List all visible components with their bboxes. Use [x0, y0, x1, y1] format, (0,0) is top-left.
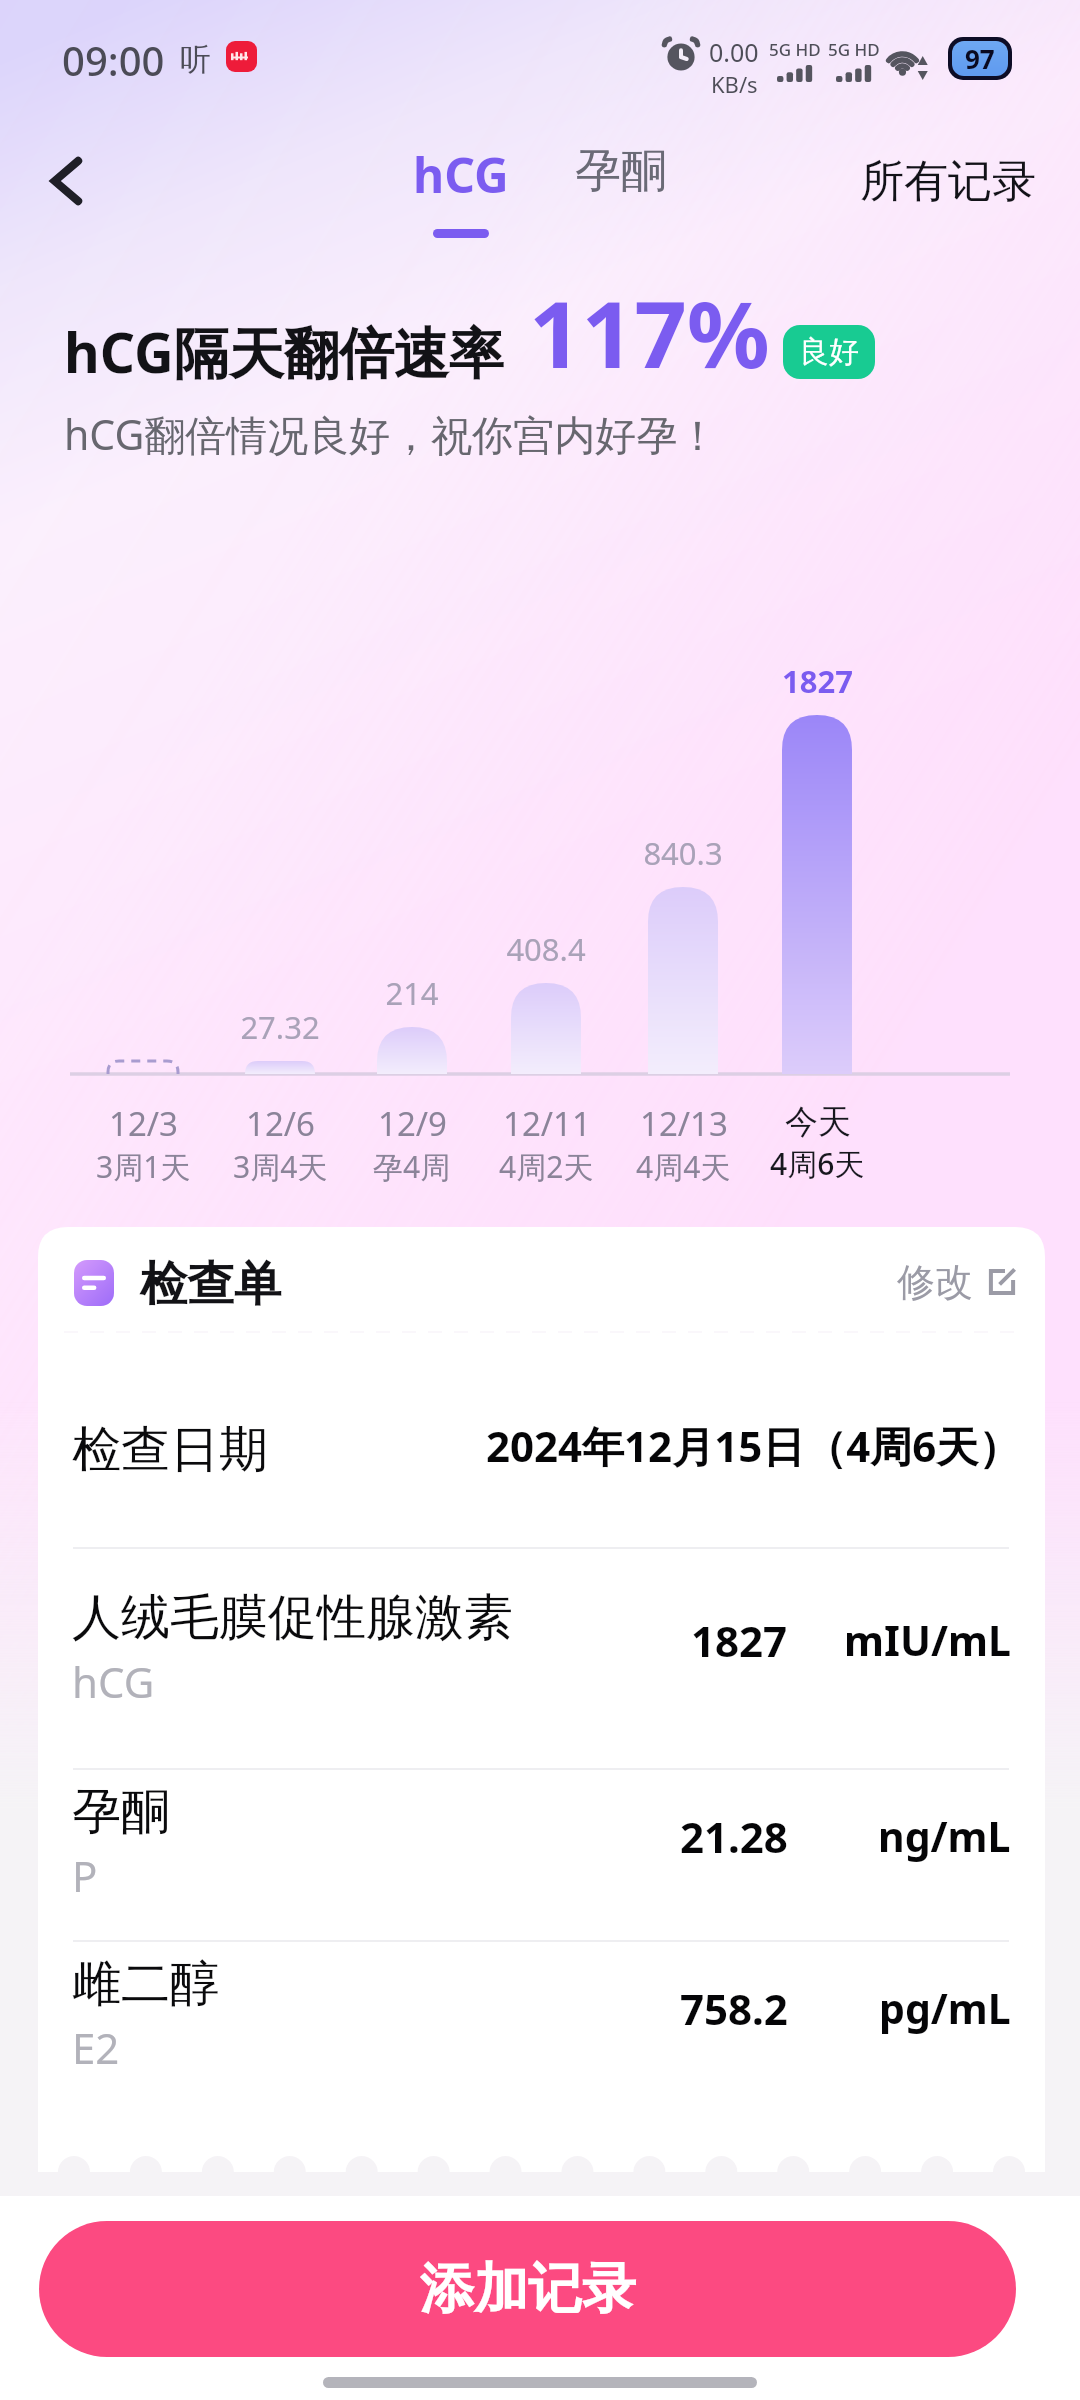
staticText: 2024年12月15日（4周6天） — [486, 1417, 1021, 1474]
staticText: 3周1天 — [96, 1146, 191, 1187]
staticText: 听 — [180, 40, 211, 79]
staticText: 117% — [529, 270, 770, 395]
staticText: 4周4天 — [636, 1146, 731, 1187]
staticText: KB/s — [711, 69, 758, 99]
staticText: 12/9 — [378, 1101, 447, 1146]
staticText: 1827 — [782, 660, 853, 702]
staticText: 检查日期 — [72, 1419, 268, 1481]
staticText: 0.00 — [709, 35, 759, 69]
button[interactable]: 添加记录 — [39, 2221, 1016, 2357]
staticText: 孕酮 — [575, 142, 667, 200]
staticText: 人绒毛膜促性腺激素 — [72, 1587, 513, 1649]
staticText: hCG — [413, 142, 509, 207]
staticText: 5G HD — [828, 38, 880, 61]
staticText: 840.3 — [643, 832, 723, 874]
button[interactable]: 修改 — [897, 1252, 1017, 1312]
staticText: 21.28 — [680, 1808, 788, 1865]
staticText: pg/mL — [879, 1980, 1011, 2036]
staticText: 408.4 — [506, 928, 586, 970]
staticText: 3周4天 — [233, 1146, 328, 1187]
staticText: 1827 — [691, 1612, 788, 1669]
button[interactable]: hCG — [391, 142, 531, 254]
staticText: hCG翻倍情况良好，祝你宫内好孕！ — [64, 406, 719, 462]
staticText: hCG — [72, 1653, 155, 1710]
button[interactable]: 所有记录 — [848, 136, 1048, 226]
staticText: 12/6 — [246, 1101, 315, 1146]
staticText: hCG隔天翻倍速率 — [64, 314, 504, 389]
staticText: mIU/mL — [844, 1612, 1011, 1668]
staticText: 5G HD — [769, 38, 821, 61]
staticText: 所有记录 — [860, 154, 1036, 209]
staticText: 12/3 — [109, 1101, 178, 1146]
staticText: 4周2天 — [499, 1146, 594, 1187]
staticText: 良好 — [799, 333, 859, 371]
staticText: 758.2 — [680, 1980, 788, 2037]
staticText: 添加记录 — [420, 2255, 636, 2323]
staticText: 97 — [965, 41, 995, 76]
staticText: 27.32 — [240, 1006, 320, 1048]
staticText: ng/mL — [878, 1808, 1011, 1864]
staticText: 09:00 — [62, 33, 165, 87]
staticText: 4周6天 — [770, 1143, 865, 1184]
staticText: 214 — [385, 972, 439, 1014]
staticText: 孕酮 — [72, 1781, 170, 1843]
staticText: 雌二醇 — [72, 1953, 219, 2015]
button[interactable]: Back — [22, 136, 112, 226]
staticText: P — [72, 1847, 98, 1904]
staticText: 今天 — [785, 1101, 851, 1143]
staticText: 12/13 — [640, 1101, 728, 1146]
button[interactable]: 孕酮 — [551, 142, 691, 216]
staticText: 12/11 — [503, 1101, 591, 1146]
staticText: 修改 — [897, 1258, 973, 1306]
staticText: 孕4周 — [373, 1146, 451, 1187]
staticText: 检查单 — [140, 1255, 281, 1314]
staticText: E2 — [72, 2019, 120, 2076]
